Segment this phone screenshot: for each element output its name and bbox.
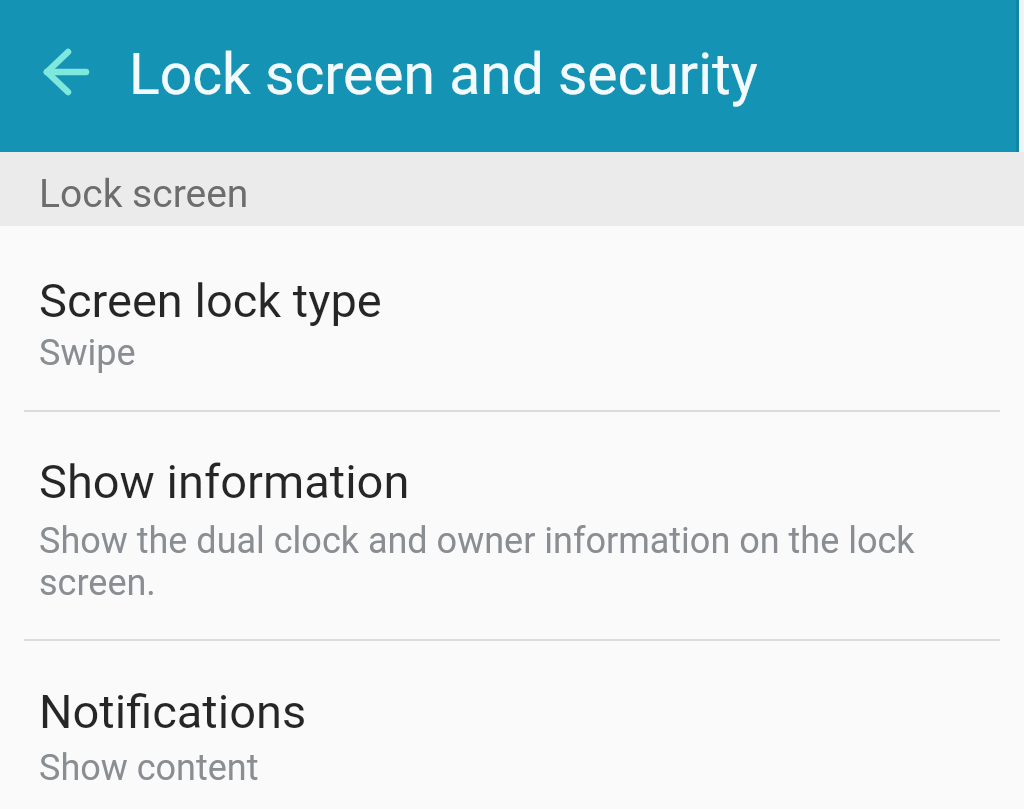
staticText: Notifications [39,684,307,739]
button[interactable]: Show information [0,412,1024,639]
staticText: Lock screen and security [129,41,758,108]
staticText: Show the dual clock and owner informatio… [39,520,915,604]
button[interactable]: Notifications [0,641,1024,789]
staticText: Show content [39,747,259,789]
staticText: Show information [39,454,410,509]
staticText: Screen lock type [39,273,382,328]
button[interactable] [0,0,88,148]
staticText: Lock screen [39,171,249,217]
staticText: Swipe [39,332,136,374]
button[interactable]: Screen lock type [0,226,1024,410]
